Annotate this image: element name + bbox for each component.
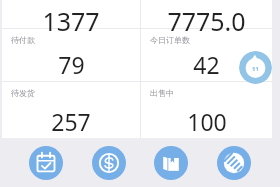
staticText: 42 bbox=[193, 49, 220, 80]
staticText: 79 bbox=[58, 49, 85, 80]
button[interactable]: Finance bbox=[92, 146, 126, 180]
staticText: 7775.0 bbox=[167, 4, 246, 32]
button[interactable]: 今日订单数 bbox=[141, 29, 272, 81]
button[interactable]: 出售中 bbox=[141, 82, 272, 138]
button[interactable]: Messages, 11 unread bbox=[239, 51, 272, 84]
button[interactable]: Reports bbox=[217, 146, 251, 180]
button[interactable]: Inventory bbox=[154, 146, 188, 180]
staticText: 今日订单数 bbox=[150, 35, 190, 45]
button[interactable]: 待发货 bbox=[2, 82, 140, 138]
staticText: 待付款 bbox=[11, 35, 35, 45]
button[interactable]: 7775.0 bbox=[141, 0, 272, 28]
staticText: 257 bbox=[51, 106, 91, 137]
staticText: 100 bbox=[187, 106, 227, 137]
button[interactable]: 待付款 bbox=[2, 29, 140, 81]
staticText: 待发货 bbox=[11, 88, 35, 98]
staticText: 出售中 bbox=[150, 88, 174, 98]
staticText: 1377 bbox=[42, 4, 100, 32]
staticText: 11 bbox=[252, 65, 259, 73]
button[interactable]: 1377 bbox=[2, 0, 140, 28]
button[interactable]: Tasks bbox=[29, 146, 63, 180]
